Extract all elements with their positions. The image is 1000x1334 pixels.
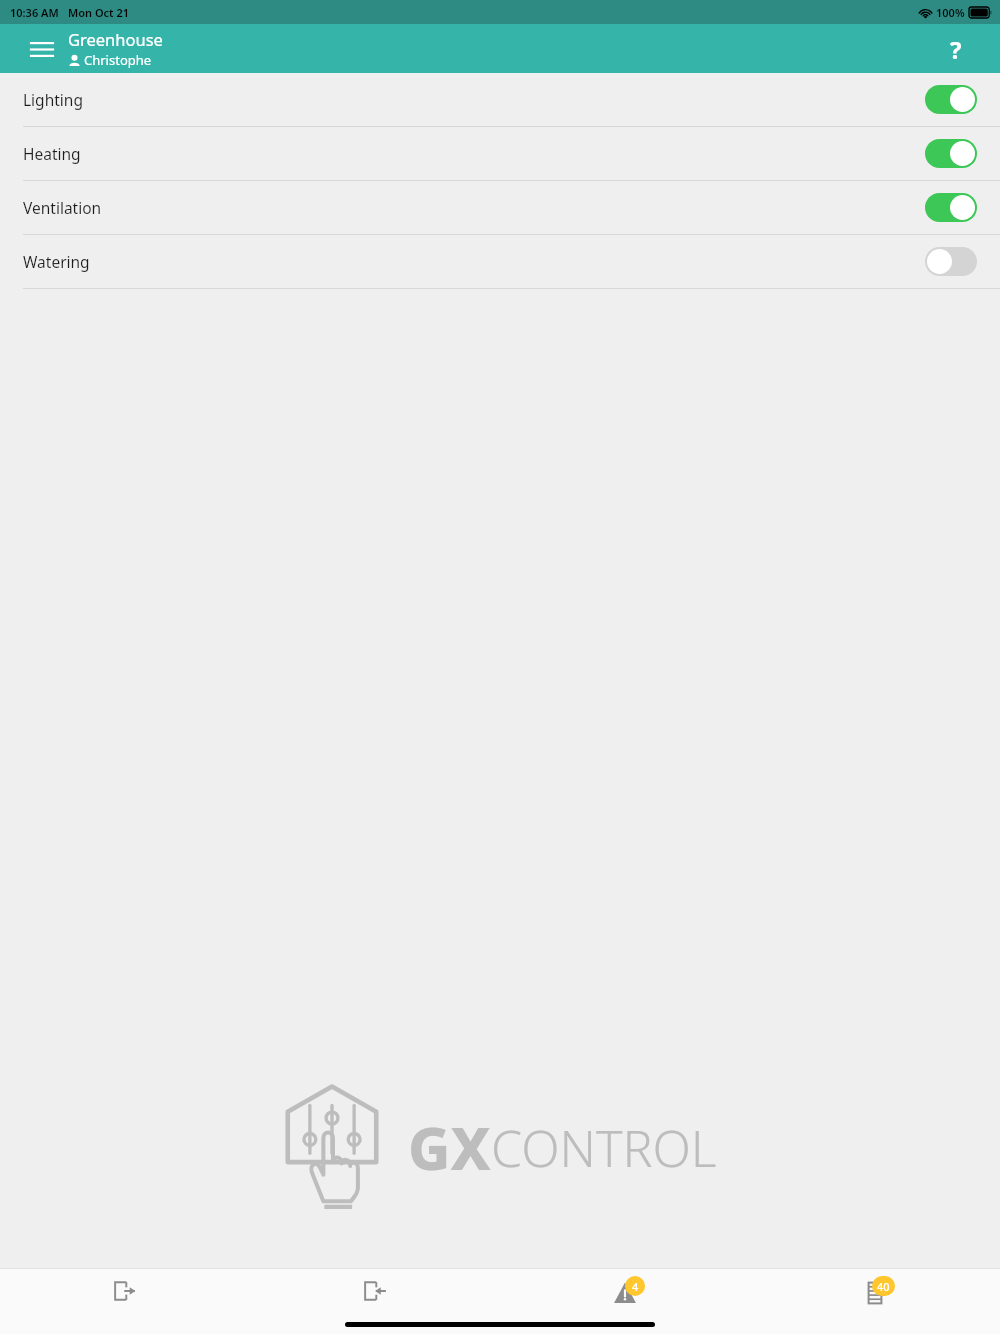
- staticText: Lighting: [23, 89, 83, 110]
- button[interactable]: Ventilation: [0, 181, 1000, 235]
- button[interactable]: Watering: [0, 235, 1000, 289]
- staticText: 40: [877, 1279, 890, 1294]
- staticText: Ventilation: [23, 197, 102, 218]
- button[interactable]: Log, 40: [750, 1269, 1000, 1313]
- button[interactable]: Lighting: [0, 73, 1000, 127]
- button[interactable]: Open navigation menu: [22, 29, 62, 69]
- button[interactable]: Help: [934, 27, 978, 71]
- button[interactable]: Login: [250, 1269, 500, 1313]
- button[interactable]: Alarms, 4: [500, 1269, 750, 1313]
- staticText: Christophe: [84, 51, 152, 69]
- staticText: Watering: [23, 251, 90, 272]
- button[interactable]: Heating: [0, 127, 1000, 181]
- staticText: CONTROL: [491, 1114, 717, 1182]
- button[interactable]: Logout: [0, 1269, 250, 1313]
- staticText: 100%: [936, 5, 965, 20]
- staticText: Heating: [23, 143, 81, 164]
- staticText: Mon Oct 21: [68, 5, 129, 20]
- staticText: ?: [950, 33, 962, 66]
- staticText: Greenhouse: [68, 28, 163, 50]
- staticText: 4: [632, 1279, 639, 1294]
- staticText: GX: [408, 1108, 491, 1187]
- staticText: 10:36 AM: [10, 5, 59, 20]
